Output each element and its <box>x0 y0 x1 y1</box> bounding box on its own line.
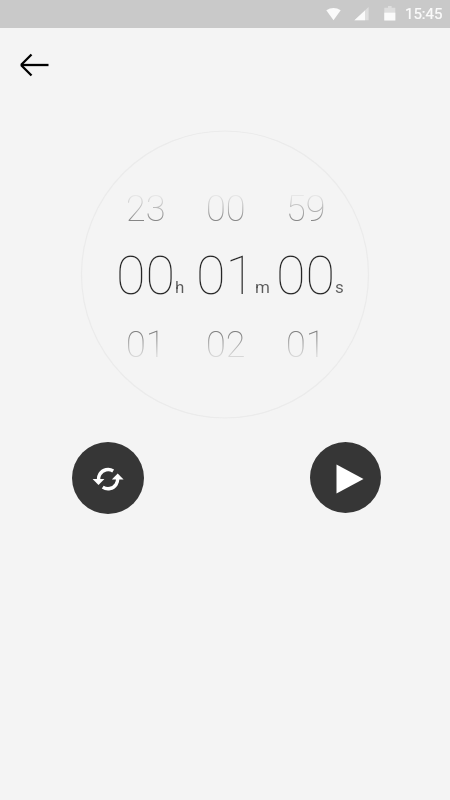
button[interactable]: Hours <box>110 186 190 362</box>
button[interactable]: Seconds <box>270 186 350 362</box>
staticText: 59 <box>286 188 326 230</box>
staticText: 00 <box>276 244 336 307</box>
staticText: 15:45 <box>405 5 443 23</box>
staticText: 02 <box>206 324 246 366</box>
staticText: h <box>175 277 185 297</box>
staticText: m <box>255 277 270 297</box>
button[interactable]: Start timer <box>310 442 381 513</box>
button[interactable]: Navigate up <box>11 41 58 88</box>
staticText: 23 <box>126 188 166 230</box>
staticText: 01 <box>286 324 326 366</box>
staticText: 01 <box>196 244 256 307</box>
staticText: 00 <box>116 244 176 307</box>
staticText: 01 <box>126 324 166 366</box>
button[interactable]: Minutes <box>190 186 270 362</box>
staticText: 00 <box>206 188 246 230</box>
button[interactable]: Reset timer <box>72 442 144 514</box>
staticText: s <box>335 277 344 297</box>
